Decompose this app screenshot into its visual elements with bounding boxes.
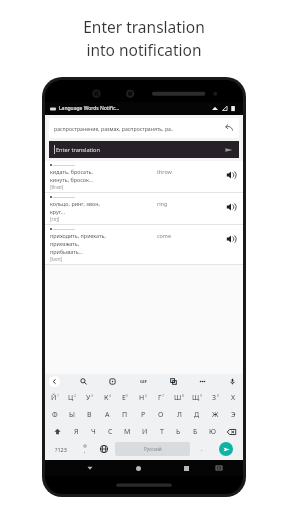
- staticText: В: [87, 410, 92, 420]
- staticText: Я: [74, 427, 79, 437]
- button[interactable]: Ю: [204, 423, 221, 440]
- staticText: распространение, размах, распространять,…: [54, 125, 221, 132]
- button[interactable]: Г: [152, 389, 170, 406]
- button[interactable]: В: [80, 406, 98, 423]
- button[interactable]: Stickers: [106, 375, 119, 388]
- staticText: прибывать...: [50, 248, 83, 255]
- button[interactable]: Х: [224, 389, 242, 406]
- button[interactable]: Р: [134, 406, 152, 423]
- button[interactable]: Switch keyboard: [213, 462, 225, 474]
- button[interactable]: Э: [224, 406, 242, 423]
- button[interactable]: Comma: [75, 440, 94, 458]
- staticText: 0: [217, 393, 219, 398]
- button[interactable]: К: [98, 389, 116, 406]
- button[interactable]: Ш: [170, 389, 188, 406]
- staticText: приезжать,: [50, 240, 80, 247]
- staticText: .: [201, 445, 203, 453]
- button[interactable]: Back: [49, 376, 60, 387]
- button[interactable]: Д: [188, 406, 206, 423]
- button[interactable]: Enter translation: [49, 141, 239, 158]
- button[interactable]: Й: [46, 389, 63, 406]
- staticText: into notification: [86, 39, 202, 60]
- button[interactable]: Recents: [180, 462, 192, 474]
- button[interactable]: ?123: [47, 440, 75, 458]
- button[interactable]: Change language: [94, 440, 113, 458]
- button[interactable]: приходить, приехать,: [45, 225, 243, 265]
- button[interactable]: С: [102, 423, 119, 440]
- staticText: [θrəʊ]: [50, 184, 64, 190]
- staticText: Enter translation: [56, 146, 223, 154]
- button[interactable]: Translate: [167, 375, 180, 388]
- button[interactable]: Б: [187, 423, 204, 440]
- button[interactable]: П: [116, 406, 134, 423]
- staticText: come: [157, 232, 171, 239]
- button[interactable]: Щ: [188, 389, 206, 406]
- staticText: Г: [158, 393, 162, 403]
- staticText: 6: [145, 393, 147, 398]
- staticText: 8: [182, 393, 184, 398]
- button[interactable]: Т: [153, 423, 170, 440]
- staticText: [rɪŋ]: [50, 216, 60, 222]
- staticText: З: [212, 393, 217, 403]
- button[interactable]: Pronounce come: [224, 232, 238, 246]
- button[interactable]: Pronounce throw: [224, 168, 238, 182]
- button[interactable]: Backspace: [221, 423, 242, 440]
- button[interactable]: Ь: [170, 423, 187, 440]
- button[interactable]: распространение, размах, распространять,…: [49, 118, 239, 138]
- staticText: GIF: [140, 379, 147, 385]
- button[interactable]: О: [152, 406, 170, 423]
- staticText: 2: [74, 393, 76, 398]
- staticText: М: [124, 427, 131, 437]
- staticText: кинуть, бросок...: [50, 176, 94, 183]
- button[interactable]: Ы: [63, 406, 80, 423]
- button[interactable]: Home: [132, 462, 144, 474]
- button[interactable]: Send: [223, 144, 234, 155]
- staticText: Й: [51, 393, 57, 403]
- staticText: А: [105, 410, 110, 420]
- staticText: П: [122, 410, 128, 420]
- staticText: Э: [231, 410, 236, 420]
- staticText: Ц: [68, 393, 74, 403]
- button[interactable]: Е: [116, 389, 134, 406]
- staticText: С: [108, 427, 113, 437]
- button[interactable]: Ц: [63, 389, 80, 406]
- button[interactable]: Shift: [46, 423, 68, 440]
- staticText: Щ: [192, 393, 200, 403]
- staticText: Ы: [69, 410, 75, 420]
- button[interactable]: More options: [196, 375, 209, 388]
- staticText: Ч: [91, 427, 96, 437]
- staticText: кольцо, ринг, звон,: [50, 200, 100, 207]
- button[interactable]: кидать, бросать,: [45, 161, 243, 193]
- staticText: Л: [177, 410, 182, 420]
- staticText: О: [158, 410, 164, 420]
- button[interactable]: Л: [170, 406, 188, 423]
- staticText: Ш: [174, 393, 182, 403]
- button[interactable]: кольцо, ринг, звон,: [45, 193, 243, 225]
- button[interactable]: Hide keyboard: [84, 462, 96, 474]
- button[interactable]: Ф: [46, 406, 63, 423]
- button[interactable]: GIF: [136, 375, 150, 389]
- staticText: 3: [91, 393, 93, 398]
- button[interactable]: Search: [77, 375, 90, 388]
- button[interactable]: Н: [134, 389, 152, 406]
- button[interactable]: Я: [68, 423, 85, 440]
- button[interactable]: Reply: [224, 123, 234, 133]
- button[interactable]: Send: [219, 442, 233, 456]
- staticText: 7: [162, 393, 164, 398]
- button[interactable]: Voice input: [226, 375, 239, 388]
- staticText: Ф: [52, 410, 58, 420]
- button[interactable]: И: [136, 423, 153, 440]
- staticText: throw: [157, 168, 172, 175]
- button[interactable]: Ж: [206, 406, 224, 423]
- button[interactable]: З: [206, 389, 224, 406]
- button[interactable]: А: [98, 406, 116, 423]
- staticText: Ю: [209, 427, 216, 437]
- button[interactable]: У: [80, 389, 98, 406]
- button[interactable]: Pronounce ring: [224, 200, 238, 214]
- staticText: кидать, бросать,: [50, 168, 93, 175]
- button[interactable]: М: [119, 423, 136, 440]
- button[interactable]: Русский: [115, 442, 190, 456]
- button[interactable]: Ч: [85, 423, 102, 440]
- staticText: Н: [139, 393, 145, 403]
